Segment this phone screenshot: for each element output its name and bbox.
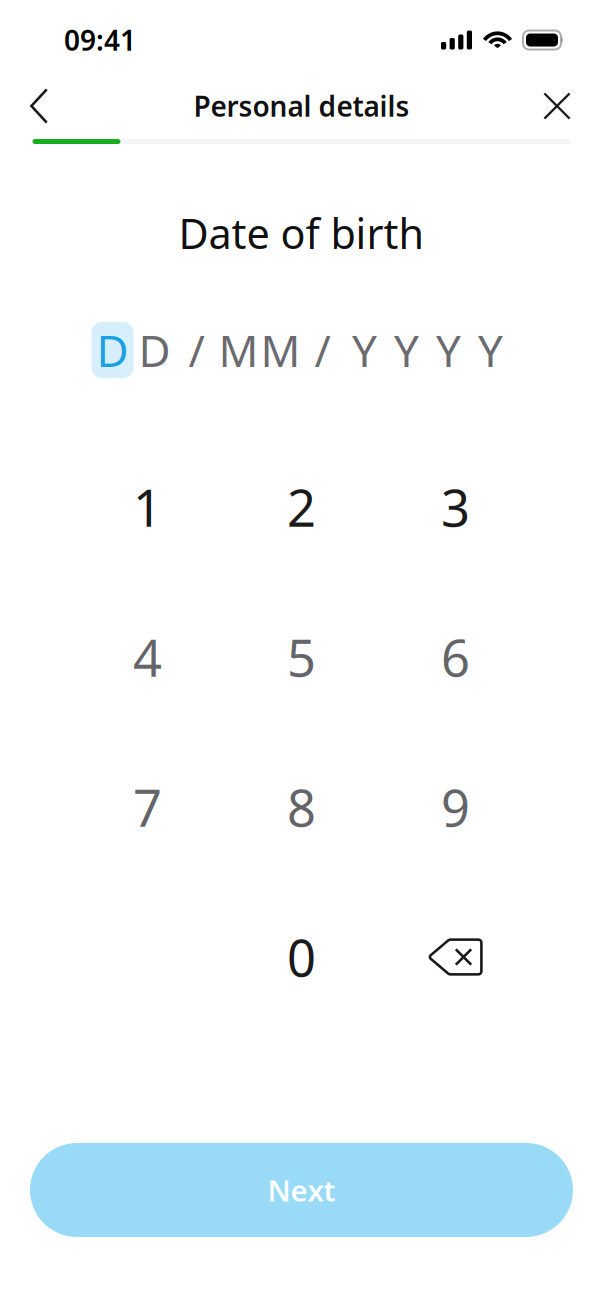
- button[interactable]: 4: [70, 582, 224, 732]
- button[interactable]: Back: [0, 72, 70, 140]
- staticText: 9: [441, 773, 470, 841]
- button[interactable]: 0: [224, 882, 378, 1032]
- staticText: 7: [133, 773, 162, 841]
- staticText: 3: [441, 473, 470, 541]
- button[interactable]: Date of birth, DD / MM / YYYY: [91, 322, 511, 378]
- staticText: M: [218, 321, 258, 379]
- button[interactable]: Delete: [378, 882, 532, 1032]
- staticText: 2: [287, 473, 316, 541]
- button[interactable]: 5: [224, 582, 378, 732]
- staticText: 8: [287, 773, 316, 841]
- staticText: D: [96, 321, 128, 379]
- staticText: Y: [352, 321, 377, 379]
- button[interactable]: 6: [378, 582, 532, 732]
- button[interactable]: Close: [521, 72, 603, 140]
- staticText: /: [188, 321, 204, 379]
- button[interactable]: 2: [224, 432, 378, 582]
- button[interactable]: 7: [70, 732, 224, 882]
- staticText: 4: [133, 623, 162, 691]
- staticText: Y: [436, 321, 461, 379]
- staticText: M: [260, 321, 300, 379]
- staticText: Next: [267, 1170, 335, 1209]
- staticText: Personal details: [193, 87, 409, 125]
- staticText: 6: [441, 623, 470, 691]
- staticText: 5: [287, 623, 316, 691]
- staticText: 09:41: [64, 21, 136, 59]
- staticText: D: [138, 321, 170, 379]
- staticText: /: [314, 321, 330, 379]
- button[interactable]: 8: [224, 732, 378, 882]
- staticText: Date of birth: [178, 206, 424, 260]
- staticText: Y: [394, 321, 419, 379]
- button[interactable]: 3: [378, 432, 532, 582]
- button[interactable]: Next: [30, 1143, 573, 1237]
- button[interactable]: 1: [70, 432, 224, 582]
- staticText: Y: [478, 321, 503, 379]
- staticText: 0: [287, 923, 316, 991]
- button[interactable]: 9: [378, 732, 532, 882]
- staticText: 1: [133, 473, 162, 541]
